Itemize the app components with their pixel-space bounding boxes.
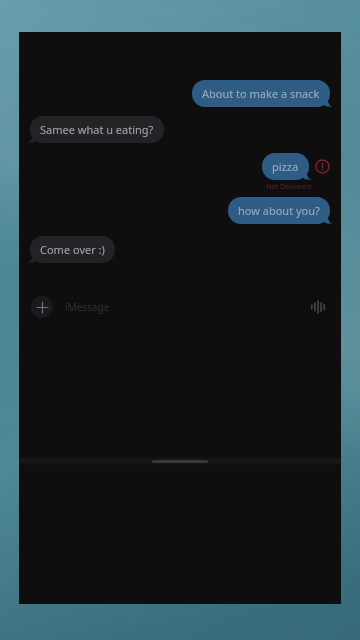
button[interactable]: how about you? — [228, 197, 330, 224]
staticText: Samee what u eating? — [40, 122, 154, 137]
button[interactable]: Message not delivered — [315, 159, 330, 174]
staticText: Come over :) — [40, 242, 105, 257]
button[interactable]: Come over :) — [30, 236, 115, 263]
button[interactable]: Add attachment — [31, 296, 53, 318]
staticText: iMessage — [65, 300, 110, 314]
button[interactable]: Record audio message — [307, 296, 329, 318]
button[interactable]: Samee what u eating? — [30, 116, 164, 143]
staticText: how about you? — [238, 203, 320, 218]
staticText: About to make a snack — [202, 86, 320, 101]
button[interactable]: iMessage — [65, 295, 299, 319]
staticText: Not Delivered — [266, 182, 312, 192]
button[interactable]: pizza — [262, 153, 309, 180]
staticText: pizza — [272, 159, 299, 174]
button[interactable]: About to make a snack — [192, 80, 330, 107]
